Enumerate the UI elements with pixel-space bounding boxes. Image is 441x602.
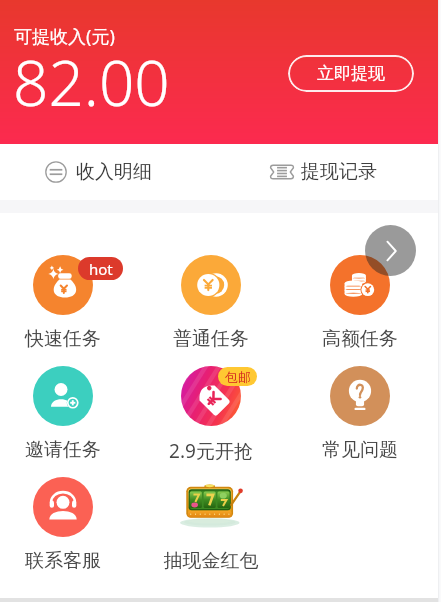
staticText: 包邮 xyxy=(225,369,251,385)
button[interactable]: 联系客服 xyxy=(1,477,125,573)
staticText: hot xyxy=(89,259,113,279)
button[interactable]: 常见问题 xyxy=(298,366,422,462)
staticText: 收入明细 xyxy=(76,160,152,184)
staticText: 提现记录 xyxy=(301,160,377,184)
button[interactable]: 邀请任务 xyxy=(1,366,125,462)
staticText: 可提收入(元) xyxy=(14,24,115,49)
button[interactable]: 抽现金红包 xyxy=(149,477,273,573)
button[interactable]: More tasks xyxy=(365,225,416,276)
button[interactable]: 立即提现 xyxy=(288,55,414,92)
button[interactable]: 高额任务 xyxy=(298,255,422,351)
staticText: 82.00 xyxy=(13,40,170,124)
staticText: 高额任务 xyxy=(298,327,422,351)
staticText: 邀请任务 xyxy=(1,438,125,462)
button[interactable]: 收入明细 xyxy=(38,144,164,200)
button[interactable]: 提现记录 xyxy=(262,144,388,200)
button[interactable]: 包邮 xyxy=(149,366,273,464)
staticText: 普通任务 xyxy=(149,327,273,351)
staticText: 抽现金红包 xyxy=(149,549,273,573)
button[interactable]: 普通任务 xyxy=(149,255,273,351)
staticText: 快速任务 xyxy=(1,327,125,351)
staticText: 2.9元开抢 xyxy=(149,438,273,464)
staticText: 立即提现 xyxy=(317,63,385,84)
button[interactable]: hot xyxy=(1,255,125,351)
staticText: 常见问题 xyxy=(298,438,422,462)
staticText: 联系客服 xyxy=(1,549,125,573)
